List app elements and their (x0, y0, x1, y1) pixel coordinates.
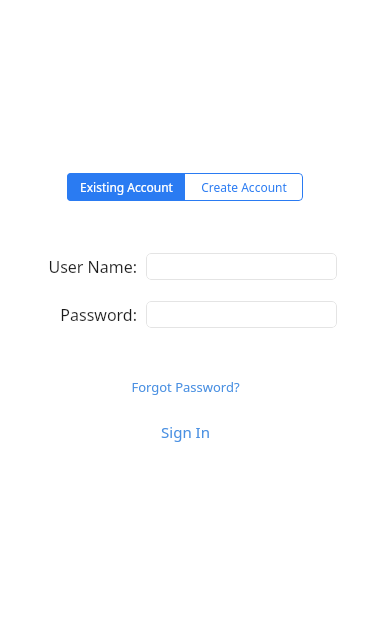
button[interactable]: Forgot Password? (123, 375, 248, 399)
button[interactable]: Sign In (151, 419, 220, 445)
button[interactable] (146, 301, 337, 328)
staticText: Forgot Password? (131, 378, 240, 396)
button[interactable]: Create Account (185, 173, 303, 201)
staticText: User Name: (48, 256, 137, 278)
button[interactable]: Existing Account (67, 173, 185, 201)
staticText: Existing Account (80, 179, 173, 195)
staticText: Password: (60, 304, 137, 326)
button[interactable] (146, 253, 337, 280)
staticText: Sign In (161, 422, 210, 442)
staticText: Create Account (201, 179, 287, 195)
